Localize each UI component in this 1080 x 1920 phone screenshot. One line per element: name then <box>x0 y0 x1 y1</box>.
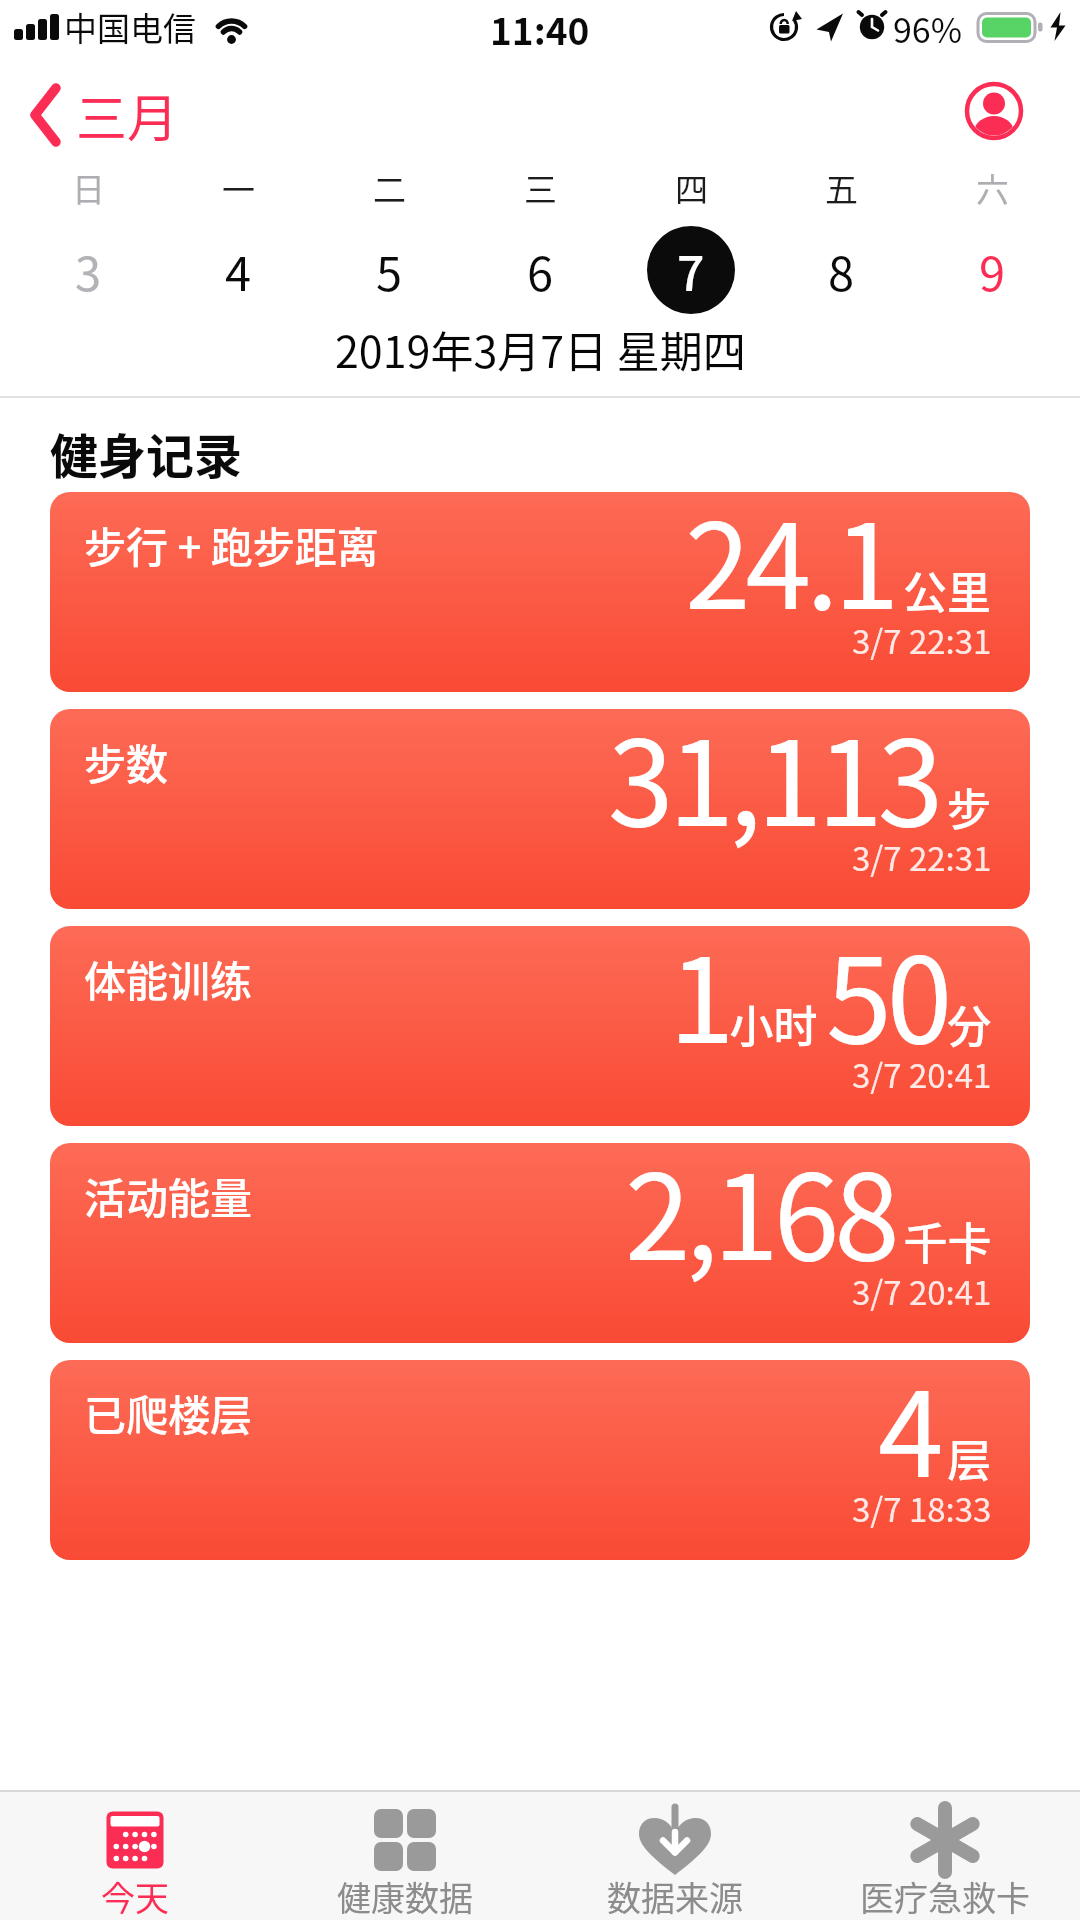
staticText: 今天 <box>101 1872 169 1920</box>
button[interactable]: 医疗急救卡 <box>810 1792 1080 1920</box>
staticText: 7 <box>677 235 705 305</box>
button[interactable]: 体能训练 <box>50 926 1030 1126</box>
staticText: 三月 <box>76 78 179 152</box>
staticText: 3/7 22:31 <box>852 616 992 664</box>
button[interactable]: 3 <box>13 236 163 304</box>
staticText: 11:40 <box>490 2 590 56</box>
staticText: 日 <box>72 164 105 212</box>
staticText: 4 <box>225 236 252 304</box>
button[interactable]: 健康数据 <box>270 1792 540 1920</box>
staticText: 24.1 公里 <box>685 492 992 643</box>
staticText: 五 <box>825 164 858 212</box>
staticText: 4 层 <box>878 1360 992 1511</box>
staticText: 2,168 千卡 <box>625 1143 992 1294</box>
staticText: 健身记录 <box>50 418 243 488</box>
button[interactable] <box>964 81 1024 141</box>
button[interactable]: 6 <box>465 236 615 304</box>
staticText: 已爬楼层 <box>84 1382 253 1443</box>
staticText: 8 <box>828 236 855 304</box>
staticText: 六 <box>976 164 1009 212</box>
staticText: 3/7 22:31 <box>852 833 992 881</box>
staticText: 96% <box>893 4 963 53</box>
staticText: 3/7 20:41 <box>852 1267 992 1315</box>
button[interactable]: 8 <box>766 236 916 304</box>
button[interactable]: 三月 <box>30 78 179 152</box>
staticText: 三 <box>524 164 557 212</box>
staticText: 9 <box>979 236 1006 304</box>
staticText: 3/7 18:33 <box>852 1484 992 1532</box>
staticText: 5 <box>376 236 403 304</box>
staticText: 3/7 20:41 <box>852 1050 992 1098</box>
staticText: 医疗急救卡 <box>860 1872 1030 1920</box>
staticText: 四 <box>675 164 708 212</box>
staticText: 体能训练 <box>84 948 253 1009</box>
staticText: 健康数据 <box>337 1872 473 1920</box>
staticText: 步数 <box>84 731 169 792</box>
staticText: 6 <box>527 236 554 304</box>
staticText: 步行 + 跑步距离 <box>84 514 379 575</box>
staticText: 31,113 步 <box>608 709 992 860</box>
button[interactable]: 活动能量 <box>50 1143 1030 1343</box>
staticText: 一 <box>222 164 255 212</box>
staticText: 2019年3月7日 星期四 <box>335 318 746 380</box>
staticText: 1小时 50分 <box>669 926 992 1077</box>
button[interactable]: 7 <box>647 226 735 314</box>
staticText: 二 <box>373 164 406 212</box>
button[interactable]: 已爬楼层 <box>50 1360 1030 1560</box>
button[interactable]: 数据来源 <box>540 1792 810 1920</box>
staticText: 3 <box>75 236 102 304</box>
button[interactable]: 4 <box>163 236 313 304</box>
staticText: 中国电信 <box>64 3 196 51</box>
button[interactable]: 今天 <box>0 1792 270 1920</box>
staticText: 数据来源 <box>607 1872 743 1920</box>
button[interactable]: 5 <box>314 236 464 304</box>
staticText: 活动能量 <box>84 1165 253 1226</box>
button[interactable]: 步行 + 跑步距离 <box>50 492 1030 692</box>
button[interactable]: 步数 <box>50 709 1030 909</box>
button[interactable]: 9 <box>917 236 1067 304</box>
